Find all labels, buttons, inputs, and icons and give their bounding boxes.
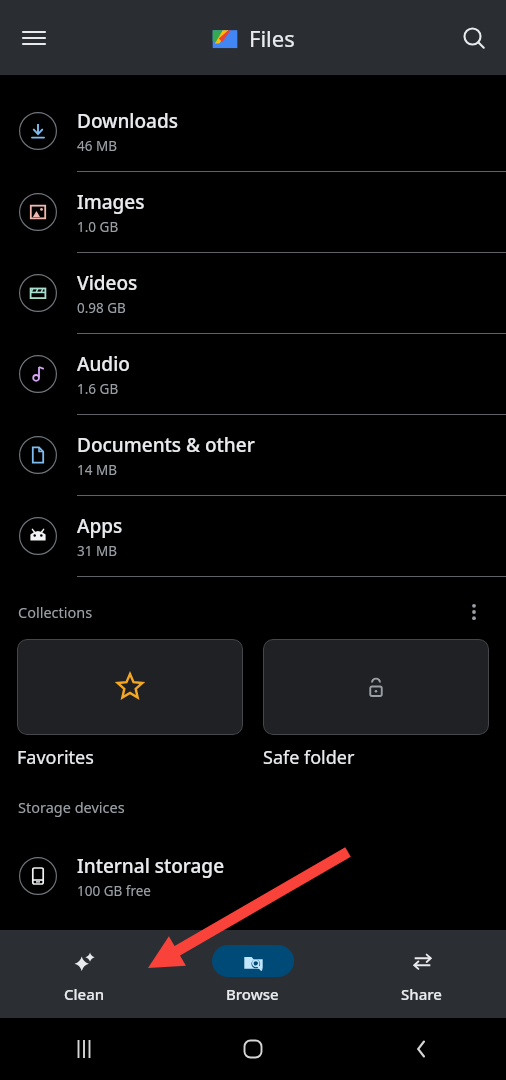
staticText: 1.6 GB [77,380,119,398]
staticText: Collections [18,602,93,622]
staticText: 14 MB [77,461,117,479]
button[interactable]: Menu [12,16,56,60]
button[interactable]: Back [396,1023,448,1075]
staticText: Safe folder [263,745,355,770]
button[interactable] [17,639,243,735]
staticText: 31 MB [77,542,117,560]
button[interactable]: Downloads [0,91,506,171]
staticText: Apps [77,513,123,539]
button[interactable]: Search [452,16,496,60]
button[interactable] [263,639,489,735]
button[interactable]: Internal storage [0,836,506,916]
staticText: Storage devices [18,797,125,817]
staticText: Downloads [77,108,178,134]
button[interactable]: Apps [0,496,506,576]
button[interactable]: Documents & other [0,415,506,495]
staticText: Files [249,23,295,53]
staticText: Audio [77,351,130,377]
button[interactable]: Videos [0,253,506,333]
staticText: 100 GB free [77,882,151,900]
button[interactable]: Home [227,1023,279,1075]
staticText: Images [77,189,145,215]
staticText: Videos [77,270,138,296]
staticText: 1.0 GB [77,218,119,236]
staticText: Favorites [17,745,94,770]
staticText: 46 MB [77,137,117,155]
button[interactable]: Images [0,172,506,252]
staticText: Browse [226,984,279,1004]
staticText: Clean [64,984,105,1004]
button[interactable]: Recent apps [58,1023,110,1075]
button[interactable]: Share [337,945,506,1004]
staticText: Internal storage [77,853,225,879]
staticText: Share [401,984,442,1004]
button[interactable]: Browse [168,945,337,1004]
staticText: Documents & other [77,432,255,458]
staticText: 0.98 GB [77,299,126,317]
button[interactable]: Clean [0,945,168,1004]
button[interactable]: More options [454,597,494,627]
button[interactable]: Audio [0,334,506,414]
